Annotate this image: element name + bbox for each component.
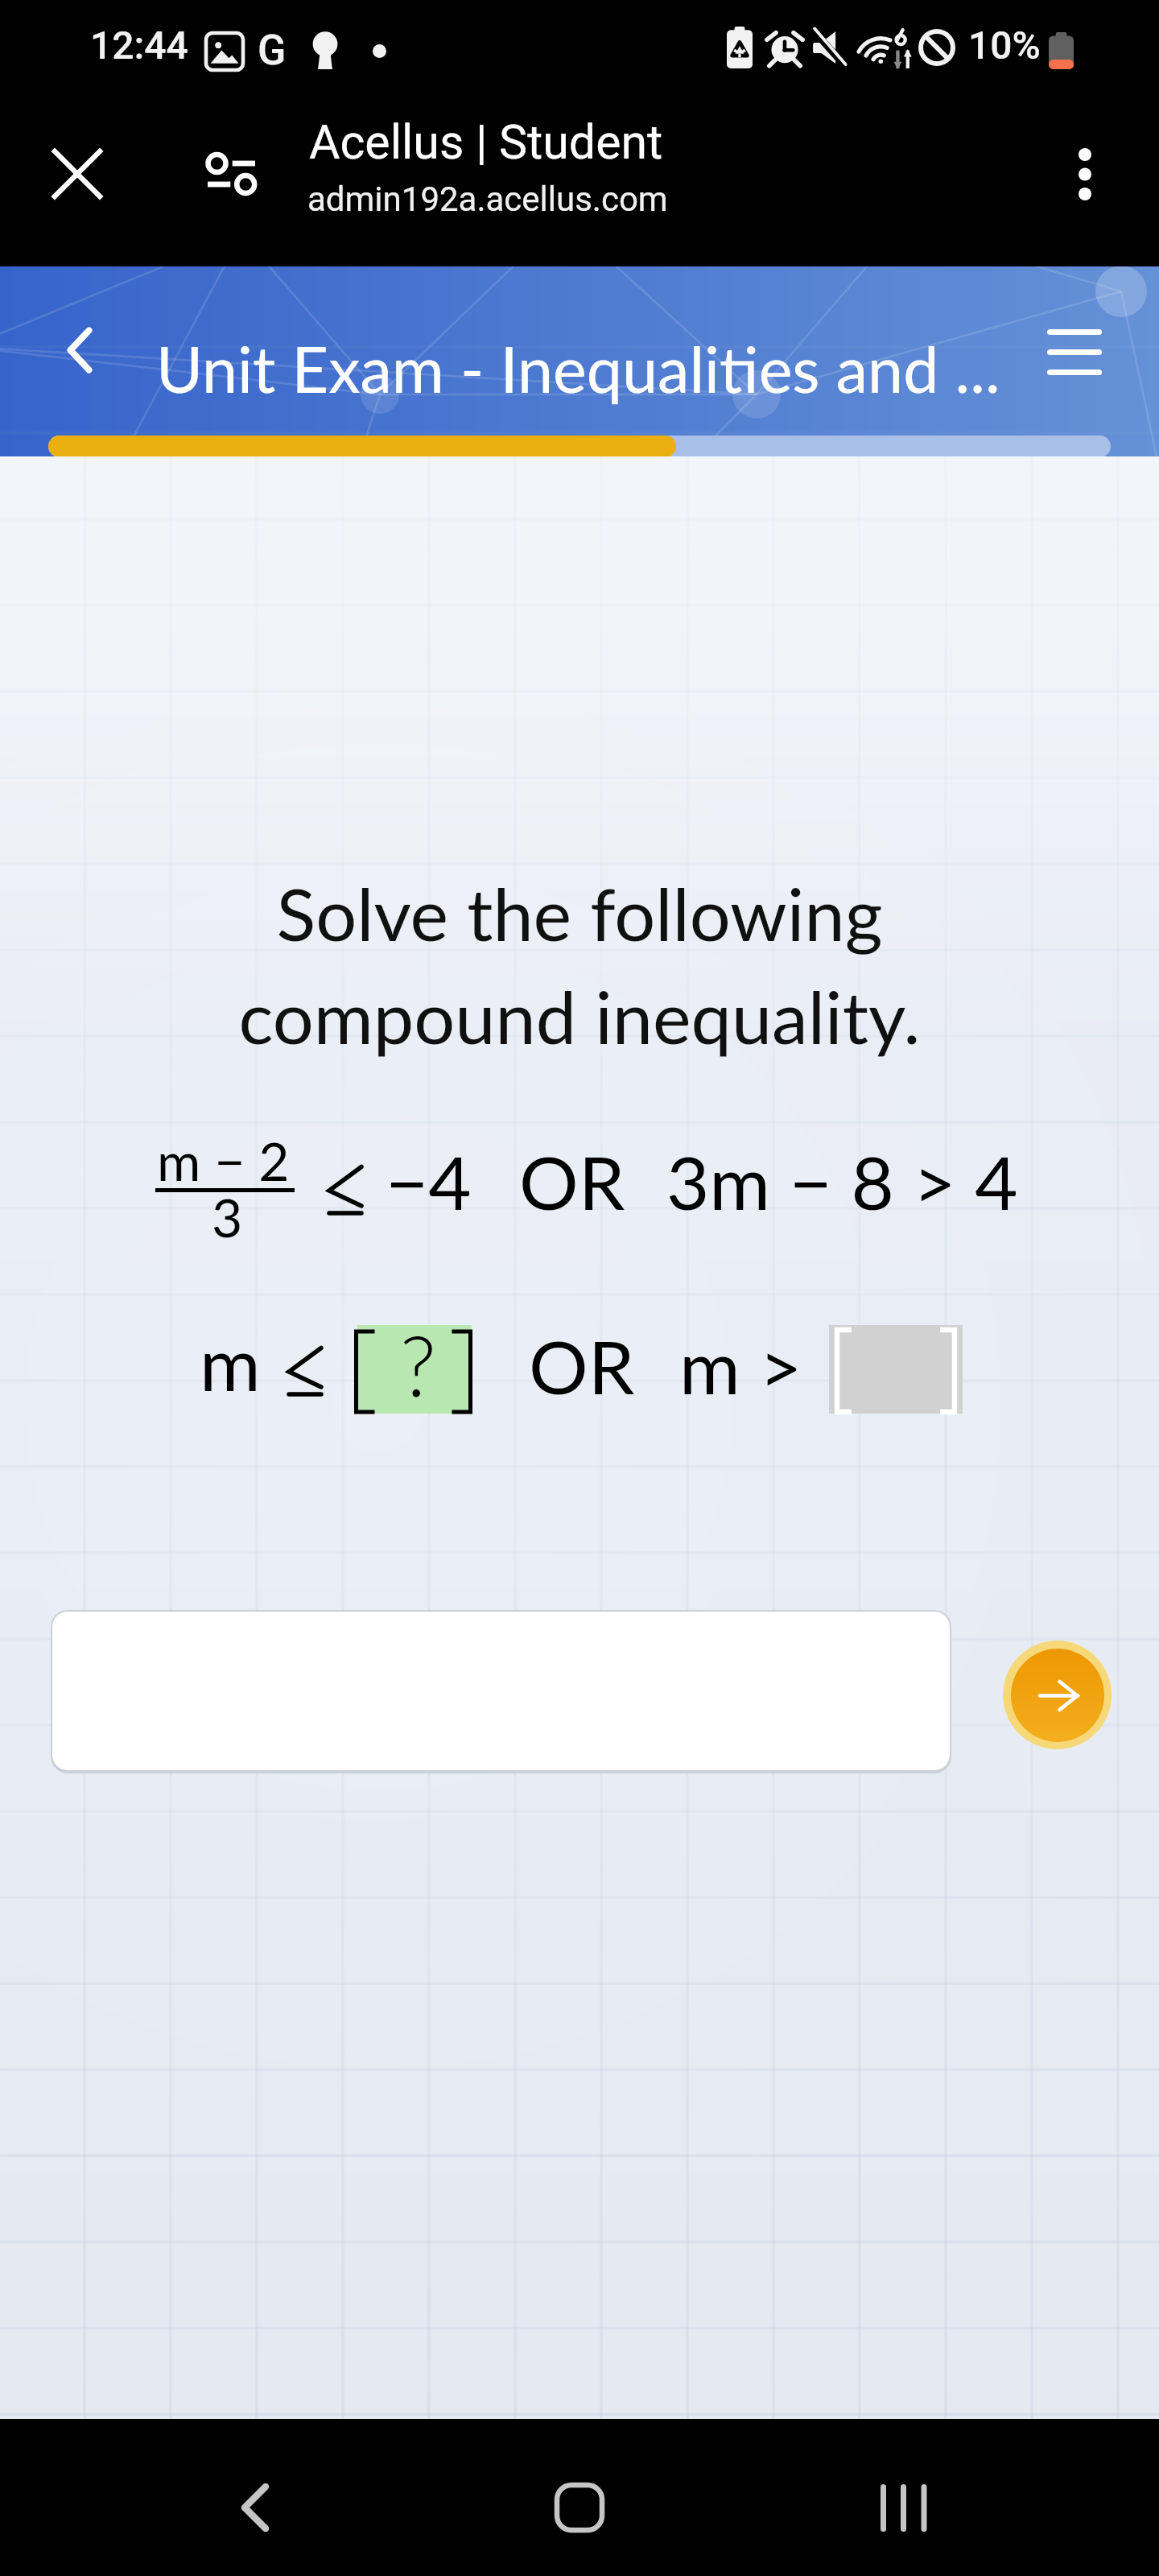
staticText: m [200, 1318, 261, 1406]
button[interactable]: Close [29, 126, 126, 222]
staticText: G [258, 26, 287, 75]
staticText: OR [529, 1321, 635, 1410]
staticText: m − 2 [157, 1129, 290, 1192]
staticText: OR [519, 1137, 625, 1225]
button[interactable]: Second answer blank [829, 1325, 963, 1414]
staticText: ? [400, 1314, 436, 1402]
staticText: Unit Exam - Inequalities and ... [156, 330, 1000, 407]
staticText: 3 [212, 1185, 243, 1249]
staticText: 3m − 8 > 4 [666, 1137, 1018, 1225]
button[interactable]: Answer input field [51, 1610, 951, 1773]
button[interactable]: Back [191, 2443, 320, 2572]
button[interactable]: More options [1037, 126, 1133, 222]
button[interactable]: Home [515, 2443, 644, 2572]
button[interactable]: Answer blank [357, 1325, 472, 1414]
button[interactable]: Recent apps [839, 2443, 968, 2572]
button[interactable]: Submit answer [1003, 1641, 1112, 1749]
button[interactable]: Page info [208, 154, 255, 194]
button[interactable]: Back [23, 294, 136, 407]
staticText: 12:44 [90, 23, 188, 68]
staticText: admin192a.acellus.com [307, 180, 668, 219]
button[interactable]: Menu [1018, 295, 1131, 408]
staticText: −4 [386, 1137, 472, 1225]
staticText: Solve the following compound inequality. [0, 869, 1159, 1059]
staticText: 10% [968, 23, 1041, 68]
staticText: Acellus | Student [309, 114, 663, 170]
staticText: m > [679, 1321, 802, 1410]
